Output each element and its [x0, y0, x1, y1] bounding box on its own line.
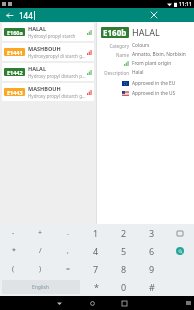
staticText: =: [66, 264, 71, 274]
staticText: Name: [101, 52, 129, 58]
button[interactable]: 7: [82, 260, 110, 278]
staticText: E1441: [7, 49, 23, 56]
staticText: ): [39, 264, 42, 274]
button[interactable]: E1442: [2, 63, 94, 81]
staticText: HALAL: [132, 26, 160, 38]
staticText: 3: [149, 227, 155, 239]
staticText: ,: [67, 246, 69, 256]
staticText: Hydroxyl propyl starch: [28, 33, 76, 39]
staticText: E1442: [7, 69, 23, 76]
staticText: MASHBOUH: [28, 45, 61, 52]
staticText: English: [32, 284, 50, 291]
button[interactable]: 0: [110, 278, 138, 296]
button[interactable]: *: [82, 278, 110, 296]
staticText: +: [38, 228, 43, 238]
staticText: Annatto, Bixin, Norbixin: [132, 51, 186, 58]
button[interactable]: E160a: [2, 23, 94, 41]
staticText: HALAL: [28, 25, 46, 32]
staticText: Category: [101, 43, 129, 49]
staticText: Approved in the US: [132, 90, 176, 97]
button[interactable]: 1: [82, 224, 110, 242]
staticText: 11:11: [179, 1, 192, 8]
button[interactable]: 8: [110, 260, 138, 278]
button[interactable]: Recent apps: [108, 296, 140, 310]
button[interactable]: #: [138, 278, 166, 296]
button[interactable]: =: [54, 260, 82, 278]
staticText: 0: [121, 281, 127, 293]
staticText: Hydroxypropyl di starch glycerol: [28, 53, 86, 59]
staticText: #: [149, 281, 155, 293]
staticText: HALAL: [28, 65, 46, 72]
staticText: Halal: [132, 69, 144, 76]
button[interactable]: Home: [76, 296, 108, 310]
button[interactable]: 3: [138, 224, 166, 242]
button[interactable]: (: [0, 260, 27, 278]
staticText: E160b: [103, 27, 127, 38]
staticText: (: [12, 264, 15, 274]
button[interactable]: 5: [110, 242, 138, 260]
staticText: 7: [93, 263, 99, 275]
staticText: 144: [19, 10, 33, 21]
staticText: Hydroxy propyl distarch glycerol: [28, 93, 86, 99]
button[interactable]: ,: [54, 242, 82, 260]
staticText: 8: [121, 263, 127, 275]
staticText: E1443: [7, 89, 23, 96]
button[interactable]: *: [0, 242, 27, 260]
button[interactable]: 9: [138, 260, 166, 278]
button[interactable]: 6: [138, 242, 166, 260]
button[interactable]: E1443: [2, 83, 94, 101]
button[interactable]: 2: [110, 224, 138, 242]
staticText: -: [12, 228, 15, 238]
button[interactable]: English: [2, 280, 80, 294]
button[interactable]: Search: [166, 242, 194, 260]
button[interactable]: -: [0, 224, 27, 242]
button[interactable]: Keyboard: [182, 296, 194, 310]
staticText: Approved in the EU: [132, 80, 176, 87]
button[interactable]: Backspace: [166, 224, 194, 242]
button[interactable]: 4: [82, 242, 110, 260]
staticText: Colours: [132, 42, 150, 49]
staticText: 2: [121, 227, 127, 239]
staticText: 6: [149, 245, 155, 257]
staticText: 1: [93, 227, 99, 239]
staticText: /: [39, 246, 42, 256]
button[interactable]: +: [27, 224, 54, 242]
staticText: 5: [121, 245, 127, 257]
staticText: From plant origin: [132, 60, 172, 67]
staticText: .: [67, 228, 69, 238]
staticText: 9: [149, 263, 155, 275]
button[interactable]: /: [27, 242, 54, 260]
staticText: MASHBOUH: [28, 85, 61, 92]
staticText: Hydroxy propyl distarch phosphate: [28, 73, 86, 79]
staticText: *: [12, 246, 16, 256]
button[interactable]: Back: [43, 296, 76, 310]
button[interactable]: Back: [4, 10, 14, 20]
staticText: *: [94, 281, 99, 293]
button[interactable]: E1441: [2, 43, 94, 61]
staticText: Description: [101, 70, 129, 76]
button[interactable]: ): [27, 260, 54, 278]
staticText: E160a: [7, 29, 23, 36]
button[interactable]: Clear search: [148, 9, 160, 21]
staticText: 4: [93, 245, 99, 257]
